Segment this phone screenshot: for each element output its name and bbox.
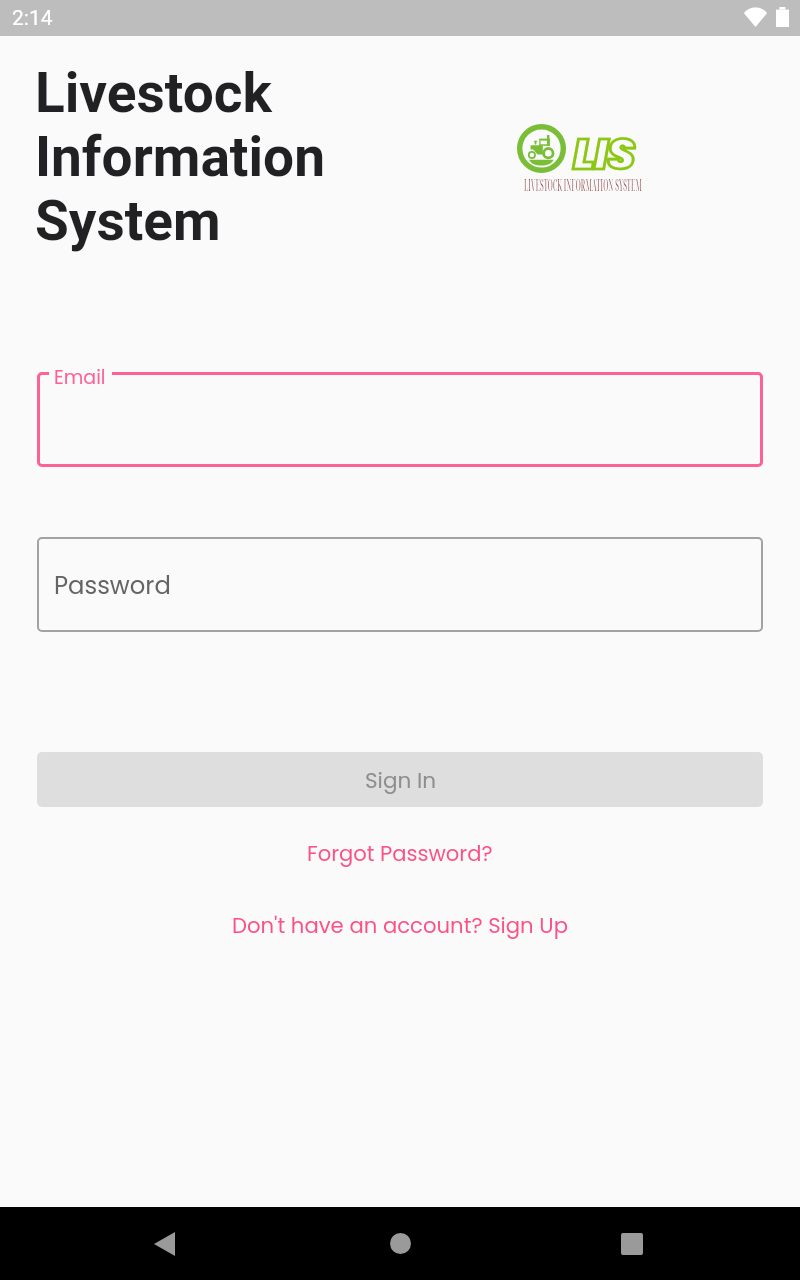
staticText: System xyxy=(35,189,221,253)
button[interactable]: Recent apps xyxy=(579,1207,685,1280)
staticText: Email xyxy=(54,364,106,384)
staticText: Don't have an account? Sign Up xyxy=(232,911,568,941)
button[interactable]: Password xyxy=(37,537,763,632)
staticText: Livestock xyxy=(35,61,272,125)
staticText: Sign In xyxy=(365,765,436,795)
staticText: Forgot Password? xyxy=(307,839,493,869)
button[interactable]: Home xyxy=(347,1207,453,1280)
button[interactable]: Forgot Password? xyxy=(0,834,800,874)
button[interactable]: Email xyxy=(37,372,763,467)
staticText: Information xyxy=(35,125,325,189)
button[interactable]: Don't have an account? Sign Up xyxy=(0,906,800,946)
staticText: 2:14 xyxy=(12,6,53,31)
button[interactable]: Back xyxy=(111,1207,217,1280)
button[interactable]: Sign In xyxy=(37,752,763,807)
staticText: Password xyxy=(54,568,171,602)
